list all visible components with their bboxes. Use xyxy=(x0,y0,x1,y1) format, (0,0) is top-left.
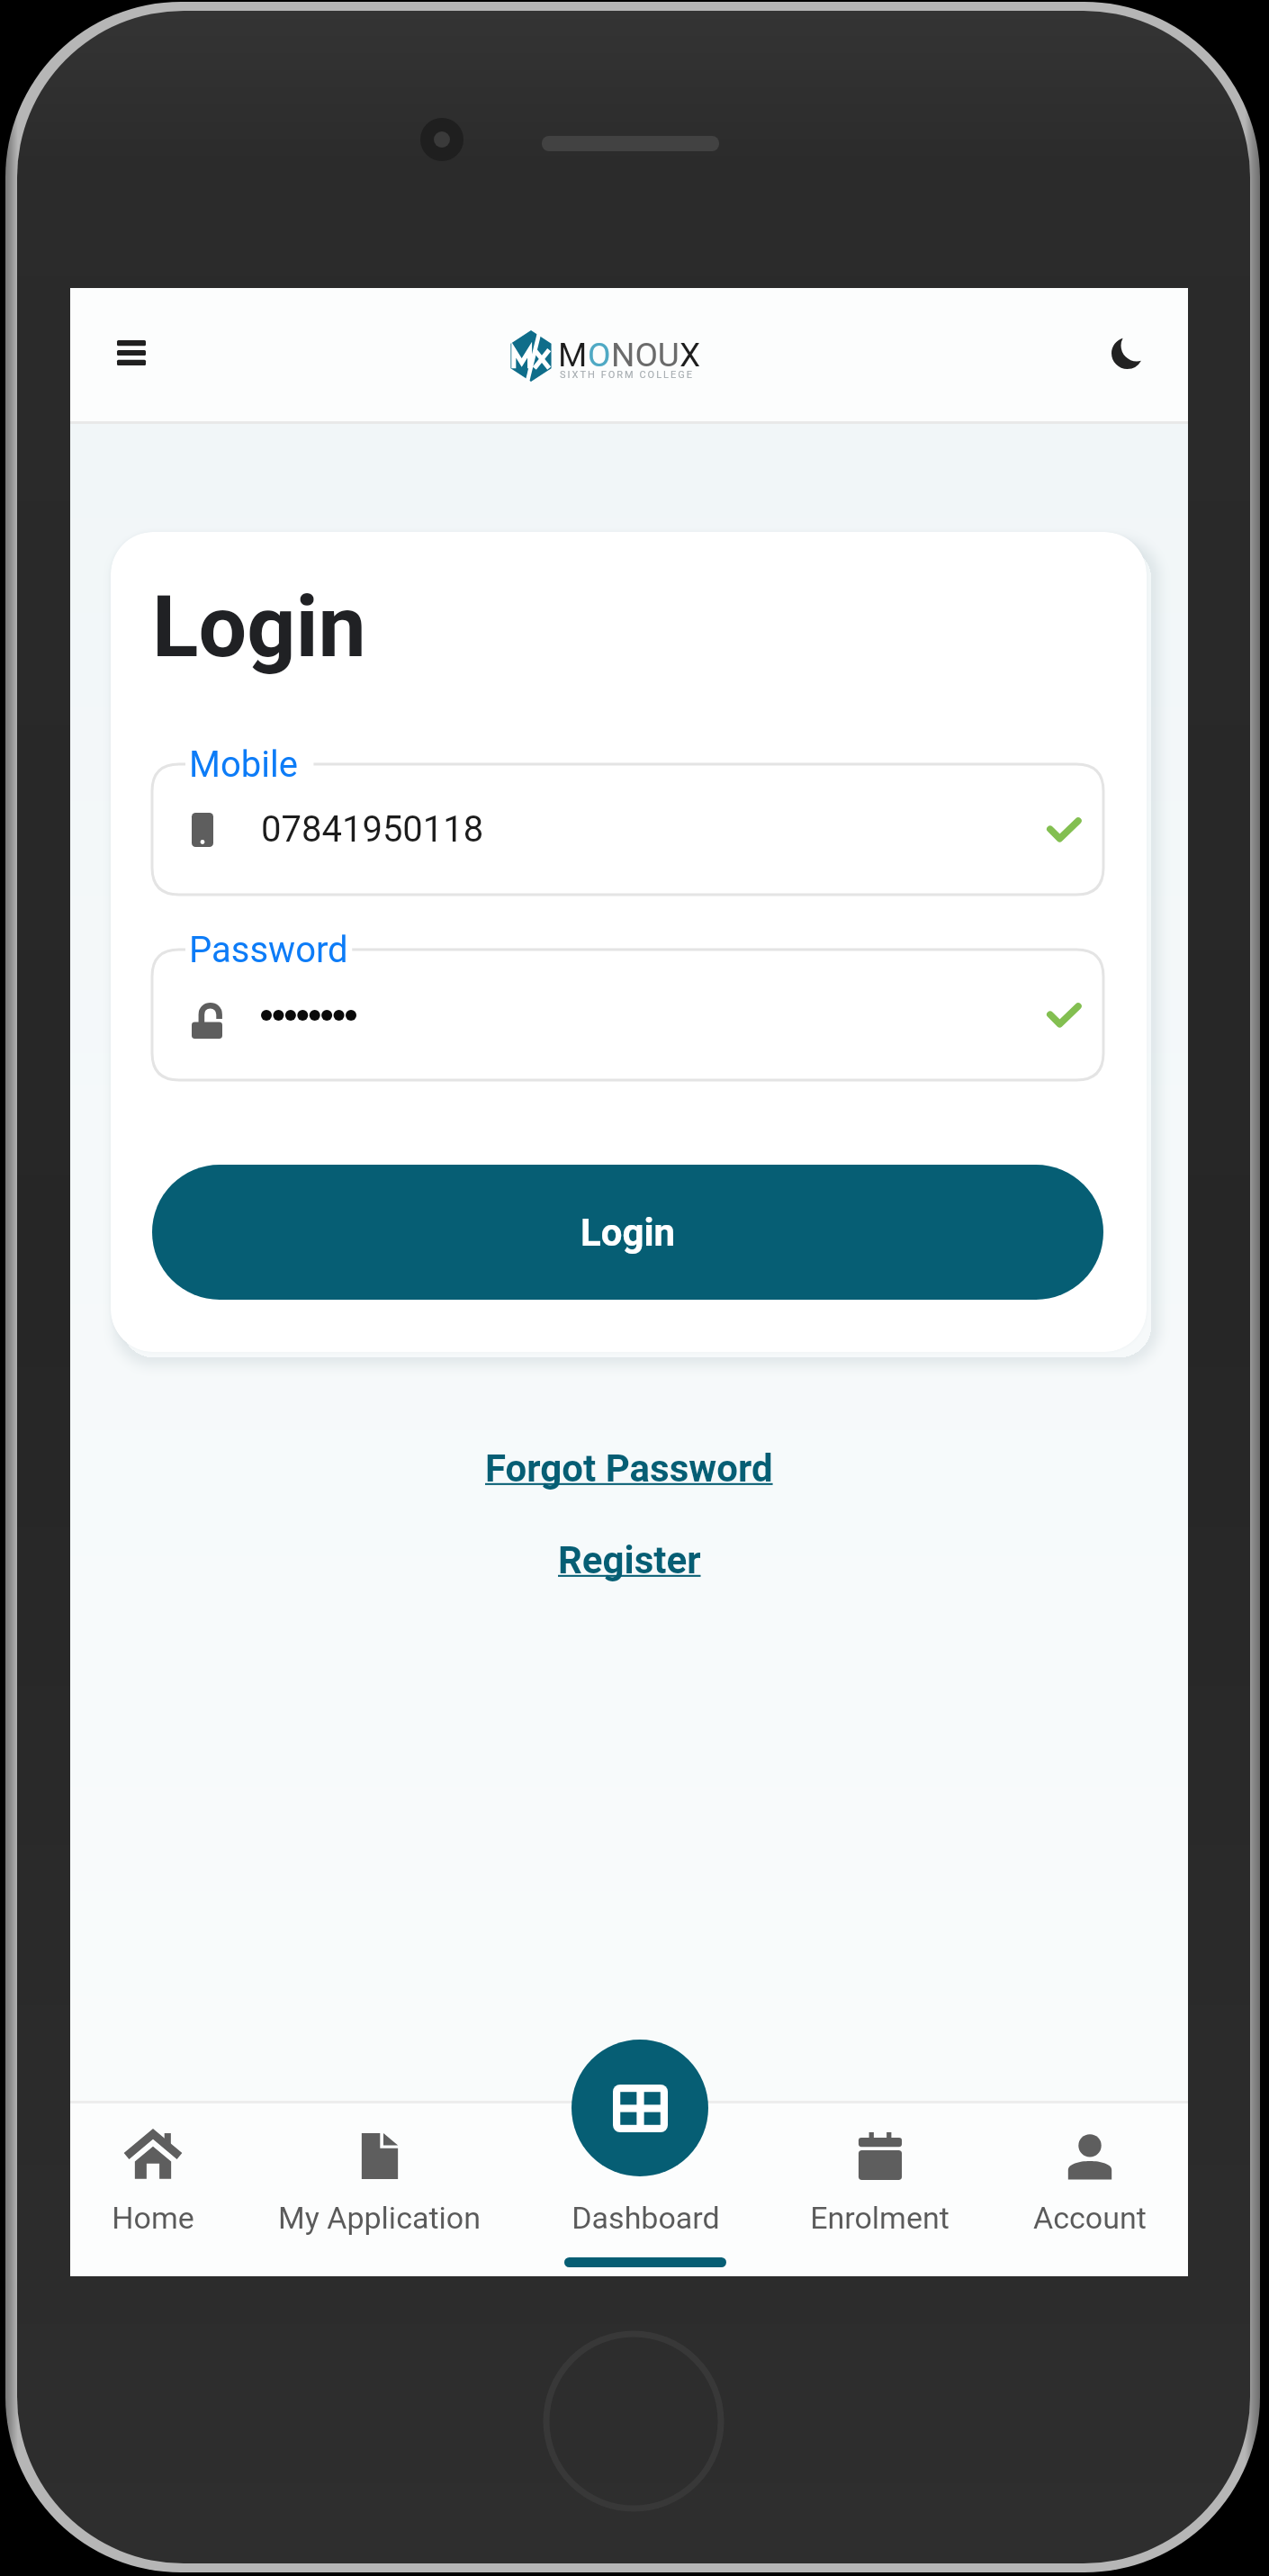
staticText: Password xyxy=(189,929,348,971)
button[interactable]: Enrolment xyxy=(799,2101,960,2276)
staticText: Mobile xyxy=(189,743,298,786)
button[interactable]: Login xyxy=(152,1165,1103,1300)
staticText: X xyxy=(679,336,701,374)
staticText: M xyxy=(558,336,588,374)
button[interactable]: Dashboard xyxy=(553,2101,737,2276)
button[interactable]: Account xyxy=(1022,2101,1157,2276)
button[interactable]: Forgot Password xyxy=(478,1443,780,1494)
staticText: 07841950118 xyxy=(261,808,484,851)
button[interactable]: Home xyxy=(101,2101,205,2276)
staticText: Login xyxy=(580,1211,676,1255)
staticText: Enrolment xyxy=(810,2200,949,2236)
staticText: Login xyxy=(152,577,366,677)
staticText: Home xyxy=(112,2200,194,2236)
staticText: SIXTH FORM COLLEGE xyxy=(560,369,694,381)
staticText: Account xyxy=(1033,2200,1147,2236)
button[interactable]: My Application xyxy=(267,2101,491,2276)
button[interactable]: Register xyxy=(551,1535,708,1586)
staticText: NOU xyxy=(611,336,679,374)
staticText: My Application xyxy=(278,2200,481,2236)
staticText: Register xyxy=(558,1538,701,1582)
staticText: Dashboard xyxy=(571,2200,720,2236)
button[interactable]: Toggle dark mode xyxy=(1086,312,1167,393)
button[interactable]: Menu xyxy=(86,308,176,398)
button[interactable]: Dashboard xyxy=(571,2040,708,2176)
staticText: Forgot Password xyxy=(485,1446,773,1491)
staticText: O xyxy=(588,336,611,374)
